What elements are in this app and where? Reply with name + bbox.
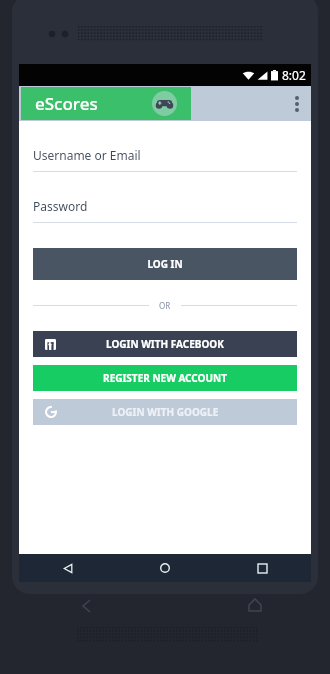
staticText: REGISTER NEW ACCOUNT (103, 371, 227, 385)
staticText: 8:02 (282, 67, 306, 83)
button[interactable]: Username or Email (33, 147, 297, 172)
button[interactable]: Home (141, 554, 189, 582)
staticText: Username or Email (33, 147, 141, 163)
button[interactable]: Back (44, 554, 92, 582)
staticText: Password (33, 198, 88, 214)
staticText: eScores (35, 92, 98, 115)
staticText: OR (159, 300, 171, 311)
button[interactable]: LOG IN (33, 248, 297, 280)
button[interactable]: LOGIN WITH FACEBOOK (33, 331, 297, 357)
button[interactable]: LOGIN WITH GOOGLE (33, 399, 297, 425)
staticText: LOG IN (147, 257, 183, 271)
button[interactable]: REGISTER NEW ACCOUNT (33, 365, 297, 391)
button[interactable]: More options (283, 86, 311, 121)
button[interactable]: Recent apps (238, 554, 286, 582)
button[interactable]: Password (33, 198, 297, 223)
staticText: LOGIN WITH GOOGLE (112, 405, 219, 419)
button[interactable]: eScores (21, 87, 191, 120)
staticText: LOGIN WITH FACEBOOK (106, 337, 224, 351)
